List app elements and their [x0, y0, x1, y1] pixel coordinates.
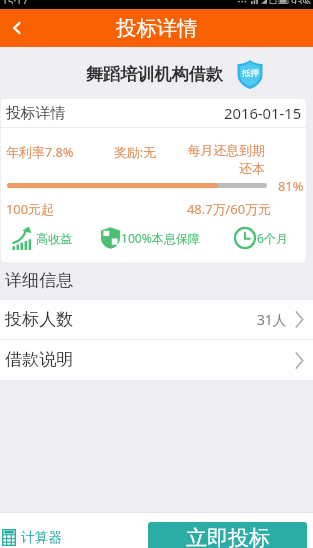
staticText: 投标详情	[116, 15, 198, 41]
staticText: 借款说明	[5, 349, 74, 371]
staticText: 100元起	[6, 200, 54, 217]
staticText: 每月还息到期还本	[183, 143, 265, 177]
staticText: 计算器	[21, 529, 63, 546]
staticText: 年利率7.8%	[6, 143, 74, 161]
staticText: 舞蹈培训机构借款	[86, 64, 223, 86]
button[interactable]: 投标人数	[0, 300, 313, 339]
button[interactable]: 计算器	[0, 512, 72, 548]
staticText: 31人	[257, 310, 287, 329]
staticText: 93%	[291, 0, 311, 4]
staticText: 48.7万/60万元	[187, 200, 271, 217]
staticText: 立即投标	[186, 525, 270, 548]
button[interactable]: 借款说明	[0, 340, 313, 380]
staticText: 2016-01-15	[224, 103, 302, 123]
staticText: 投标详情	[6, 104, 66, 123]
staticText: 投标人数	[5, 309, 74, 331]
staticText: 抵押	[242, 68, 259, 79]
staticText: 高收益	[36, 231, 73, 246]
staticText: 100%本息保障	[121, 230, 201, 247]
staticText: 详细信息	[5, 270, 74, 292]
button[interactable]: 立即投标	[148, 522, 307, 548]
staticText: 81%	[278, 177, 304, 195]
staticText: 6个月	[257, 230, 289, 247]
staticText: 奖励:无	[114, 143, 157, 161]
button[interactable]: Back	[0, 9, 34, 47]
staticText: 15:17	[2, 0, 28, 4]
